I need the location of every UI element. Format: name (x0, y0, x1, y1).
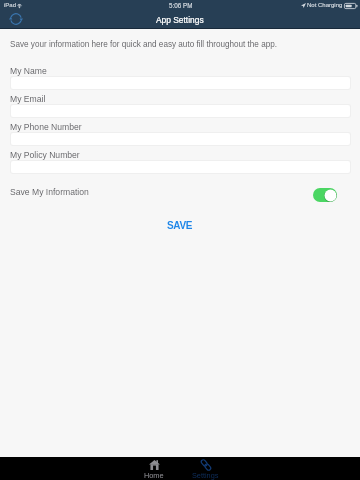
staticText: SAVE (167, 220, 193, 231)
staticText: Home (144, 471, 164, 479)
staticText: App Settings (156, 15, 204, 24)
staticText: My Name (10, 66, 47, 76)
staticText: My Phone Number (10, 122, 82, 132)
staticText: My Policy Number (10, 150, 80, 160)
button[interactable]: Refresh (9, 12, 23, 26)
staticText: Settings (192, 471, 219, 479)
staticText: Save your information here for quick and… (10, 40, 277, 49)
staticText: iPad (4, 2, 17, 9)
staticText: Save My Information (10, 187, 89, 197)
staticText: My Email (10, 94, 46, 104)
button[interactable]: Save My Information toggle (313, 188, 337, 202)
button[interactable]: Settings (187, 457, 223, 480)
button[interactable]: SAVE (153, 215, 207, 236)
button[interactable]: Home (136, 457, 172, 480)
staticText: Not Charging (307, 2, 343, 9)
staticText: 5:06 PM (169, 2, 193, 9)
